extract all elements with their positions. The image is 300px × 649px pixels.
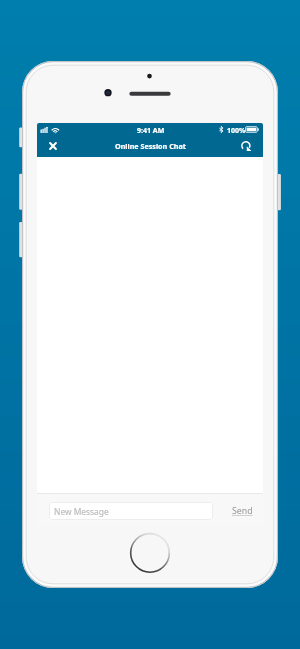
staticText: New Message xyxy=(54,506,109,517)
button[interactable]: Send xyxy=(229,503,255,519)
staticText: Online Session Chat xyxy=(115,141,186,151)
button[interactable]: Close xyxy=(45,138,61,154)
button[interactable]: New Message xyxy=(49,502,213,520)
staticText: 9:41 AM xyxy=(137,126,165,136)
staticText: Send xyxy=(232,505,253,517)
button[interactable]: Refresh xyxy=(240,140,256,156)
staticText: 100% xyxy=(227,126,246,136)
